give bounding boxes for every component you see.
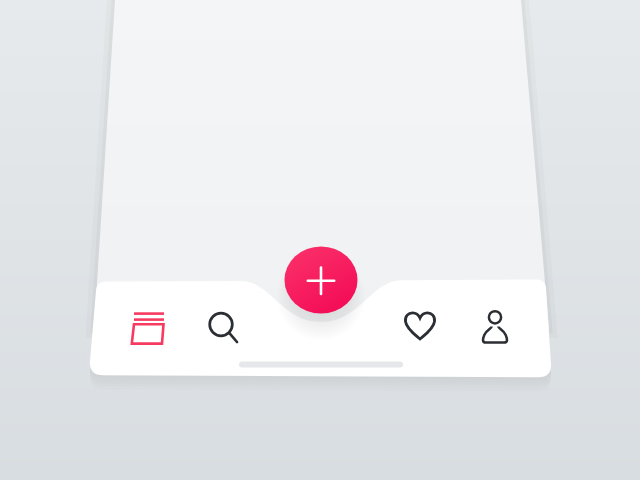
button[interactable] — [194, 299, 250, 355]
button[interactable] — [120, 300, 176, 356]
button[interactable] — [467, 299, 523, 355]
button[interactable] — [284, 246, 358, 314]
button[interactable] — [392, 298, 448, 354]
